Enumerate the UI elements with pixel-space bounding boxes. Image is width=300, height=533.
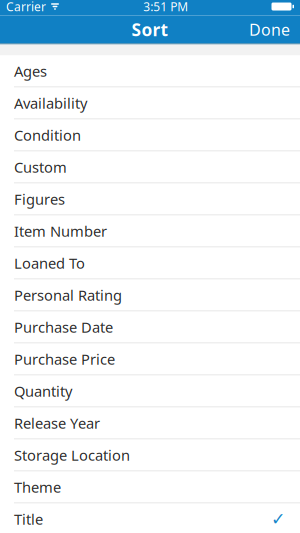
button[interactable]: Storage Location [0, 439, 300, 471]
button[interactable]: Ages [0, 55, 300, 87]
staticText: Ages [14, 61, 47, 81]
button[interactable]: Loaned To [0, 247, 300, 279]
button[interactable]: Figures [0, 183, 300, 215]
staticText: Condition [14, 125, 81, 145]
button[interactable]: Purchase Date [0, 311, 300, 343]
button[interactable]: Condition [0, 119, 300, 151]
staticText: Carrier [6, 0, 46, 14]
button[interactable]: Custom [0, 151, 300, 183]
button[interactable]: Quantity [0, 375, 300, 407]
staticText: Loaned To [14, 253, 85, 273]
staticText: Done [249, 19, 290, 40]
staticText: Custom [14, 157, 67, 177]
staticText: Purchase Date [14, 317, 113, 337]
staticText: Title [14, 509, 43, 529]
button[interactable]: Theme [0, 471, 300, 503]
button[interactable]: Personal Rating [0, 279, 300, 311]
staticText: Storage Location [14, 445, 130, 465]
staticText: Quantity [14, 381, 72, 401]
staticText: ✓ [271, 509, 286, 529]
button[interactable]: Release Year [0, 407, 300, 439]
staticText: Purchase Price [14, 349, 115, 369]
button[interactable]: Availability [0, 87, 300, 119]
staticText: Theme [14, 477, 61, 497]
button[interactable]: Item Number [0, 215, 300, 247]
staticText: Figures [14, 189, 65, 209]
staticText: Release Year [14, 413, 100, 433]
button[interactable]: Done [239, 13, 300, 46]
button[interactable]: Purchase Price [0, 343, 300, 375]
staticText: Item Number [14, 221, 107, 241]
staticText: Sort [131, 18, 168, 41]
staticText: Personal Rating [14, 285, 122, 305]
staticText: Availability [14, 93, 87, 113]
staticText: 3:51 PM [143, 0, 188, 14]
button[interactable]: Title [0, 503, 300, 533]
